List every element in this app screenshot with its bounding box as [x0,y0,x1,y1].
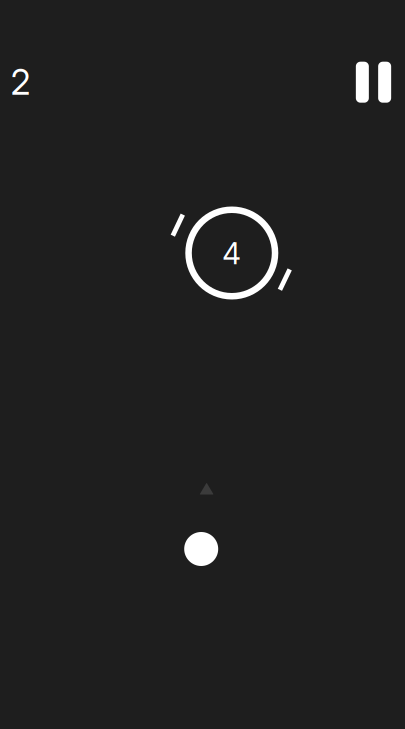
staticText: 4 [222,236,241,271]
staticText: 2 [10,61,30,103]
button[interactable]: Pause [349,59,397,105]
